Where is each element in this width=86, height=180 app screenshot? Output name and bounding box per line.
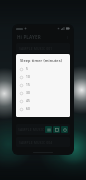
button[interactable]: 15 <box>20 82 67 88</box>
staticText: 60 <box>26 107 30 111</box>
staticText: 30 <box>26 91 30 95</box>
staticText: SAMPLE MUSIC 003 <box>18 127 45 132</box>
button[interactable]: 10 <box>20 74 67 80</box>
button[interactable]: 45 <box>20 98 67 104</box>
button[interactable]: SAMPLE MUSIC 002 <box>16 55 70 65</box>
button[interactable]: SAMPLE MUSIC 003 <box>16 124 70 135</box>
button[interactable]: Stop <box>53 126 60 133</box>
staticText: SAMPLE MUSIC 004 <box>19 140 53 145</box>
button[interactable]: 5 <box>20 66 67 72</box>
staticText: 10 <box>26 75 30 79</box>
staticText: SAMPLE MUSIC 002 <box>19 58 53 63</box>
button[interactable]: Next <box>61 126 68 133</box>
staticText: 45 <box>26 99 30 103</box>
staticText: Sleep timer (minutes) <box>20 58 62 63</box>
staticText: 5 <box>26 67 28 71</box>
staticText: SAMPLE MUSIC 001 <box>19 46 53 51</box>
button[interactable]: Pause <box>45 126 52 133</box>
button[interactable]: Hi PLAYER <box>13 32 73 42</box>
staticText: Hi PLAYER <box>17 34 41 40</box>
staticText: 15 <box>26 83 30 87</box>
button[interactable]: 60 <box>20 106 67 112</box>
button[interactable]: 30 <box>20 90 67 96</box>
